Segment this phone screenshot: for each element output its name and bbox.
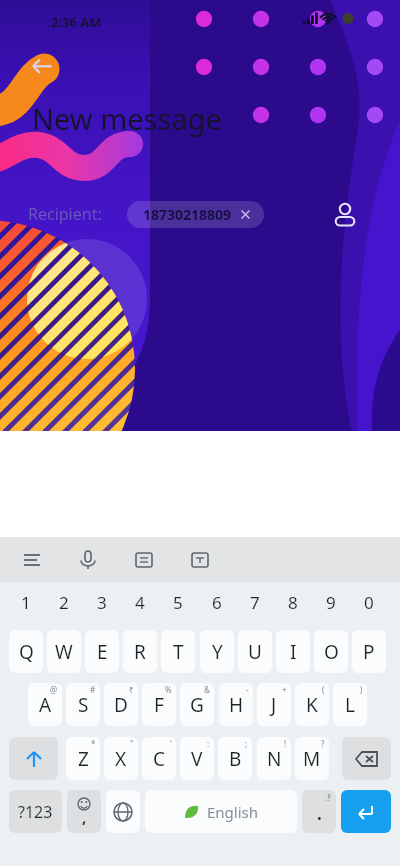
staticText: 8: [288, 591, 298, 614]
staticText: S: [78, 692, 89, 718]
staticText: 2:36 AM: [51, 13, 102, 31]
button[interactable]: 9: [314, 587, 348, 617]
button[interactable]: S: [66, 683, 100, 726]
button[interactable]: W: [47, 630, 81, 673]
button[interactable]: 1: [9, 587, 43, 617]
button[interactable]: Text editing: [182, 542, 218, 578]
button[interactable]: D: [104, 683, 138, 726]
button[interactable]: Emoji and comma: [67, 790, 101, 833]
button[interactable]: 6: [200, 587, 234, 617]
staticText: English: [207, 802, 259, 822]
button[interactable]: L: [333, 683, 367, 726]
button[interactable]: Y: [200, 630, 234, 673]
button[interactable]: Change language: [106, 790, 140, 833]
staticText: ": [130, 738, 134, 749]
button[interactable]: X: [104, 737, 138, 780]
staticText: 18730218809: [143, 205, 232, 224]
button[interactable]: 7: [238, 587, 272, 617]
button[interactable]: Enter: [341, 790, 391, 833]
button[interactable]: Back: [21, 48, 63, 90]
button[interactable]: Z: [66, 737, 100, 780]
staticText: W: [55, 639, 73, 665]
staticText: ): [360, 684, 363, 695]
button[interactable]: Menu: [14, 542, 50, 578]
staticText: (: [322, 684, 325, 695]
button[interactable]: Voice input: [70, 542, 106, 578]
button[interactable]: 18730218809: [127, 201, 264, 228]
staticText: G: [190, 692, 204, 718]
staticText: ?123: [18, 801, 53, 823]
staticText: *: [91, 738, 96, 749]
button[interactable]: Recipient:: [28, 203, 102, 225]
staticText: O: [324, 639, 339, 665]
button[interactable]: Add contact: [325, 192, 365, 232]
staticText: %: [165, 684, 172, 695]
button[interactable]: K: [295, 683, 329, 726]
staticText: R: [134, 639, 146, 665]
button[interactable]: U: [238, 630, 272, 673]
staticText: 4: [135, 591, 145, 614]
button[interactable]: M: [295, 737, 329, 780]
button[interactable]: Period: [302, 790, 336, 833]
staticText: ,: [82, 807, 87, 827]
button[interactable]: Clipboard: [126, 542, 162, 578]
staticText: X: [115, 746, 127, 772]
staticText: ?: [321, 738, 325, 749]
staticText: ₹: [129, 684, 134, 695]
button[interactable]: G: [180, 683, 214, 726]
button[interactable]: P: [352, 630, 386, 673]
button[interactable]: Shift: [9, 737, 58, 780]
button[interactable]: 2: [47, 587, 81, 617]
button[interactable]: Backspace: [342, 737, 391, 780]
button[interactable]: English: [145, 790, 297, 833]
staticText: N: [267, 746, 282, 772]
button[interactable]: 0: [352, 587, 386, 617]
staticText: J: [271, 692, 277, 718]
button[interactable]: O: [314, 630, 348, 673]
staticText: @: [50, 684, 58, 695]
staticText: .‽: [325, 792, 331, 803]
button[interactable]: ?123: [9, 790, 62, 833]
staticText: 7: [250, 591, 260, 614]
staticText: P: [363, 639, 375, 665]
button[interactable]: H: [219, 683, 253, 726]
button[interactable]: I: [276, 630, 310, 673]
button[interactable]: B: [218, 737, 252, 780]
button[interactable]: 8: [276, 587, 310, 617]
staticText: M: [303, 746, 321, 772]
staticText: 3: [97, 591, 107, 614]
staticText: U: [248, 639, 262, 665]
button[interactable]: A: [28, 683, 62, 726]
staticText: A: [39, 692, 52, 718]
staticText: 1: [21, 591, 31, 614]
button[interactable]: T: [161, 630, 195, 673]
staticText: E: [97, 639, 108, 665]
button[interactable]: R: [123, 630, 157, 673]
staticText: 0: [364, 591, 374, 614]
staticText: Z: [78, 746, 89, 772]
staticText: 5: [173, 591, 183, 614]
staticText: V: [191, 746, 203, 772]
staticText: B: [229, 746, 242, 772]
button[interactable]: E: [85, 630, 119, 673]
button[interactable]: N: [257, 737, 291, 780]
staticText: F: [154, 692, 164, 718]
staticText: !: [284, 738, 287, 749]
button[interactable]: 4: [123, 587, 157, 617]
staticText: -: [246, 684, 249, 695]
staticText: #: [90, 684, 96, 695]
button[interactable]: J: [257, 683, 291, 726]
button[interactable]: F: [142, 683, 176, 726]
staticText: Y: [212, 639, 223, 665]
staticText: .: [317, 802, 322, 825]
button[interactable]: 3: [85, 587, 119, 617]
staticText: :: [207, 738, 210, 749]
button[interactable]: 5: [161, 587, 195, 617]
staticText: Recipient:: [28, 203, 102, 225]
button[interactable]: Q: [9, 630, 43, 673]
button[interactable]: C: [142, 737, 176, 780]
staticText: ;: [245, 738, 248, 749]
staticText: T: [173, 639, 184, 665]
button[interactable]: V: [180, 737, 214, 780]
staticText: H: [229, 692, 244, 718]
